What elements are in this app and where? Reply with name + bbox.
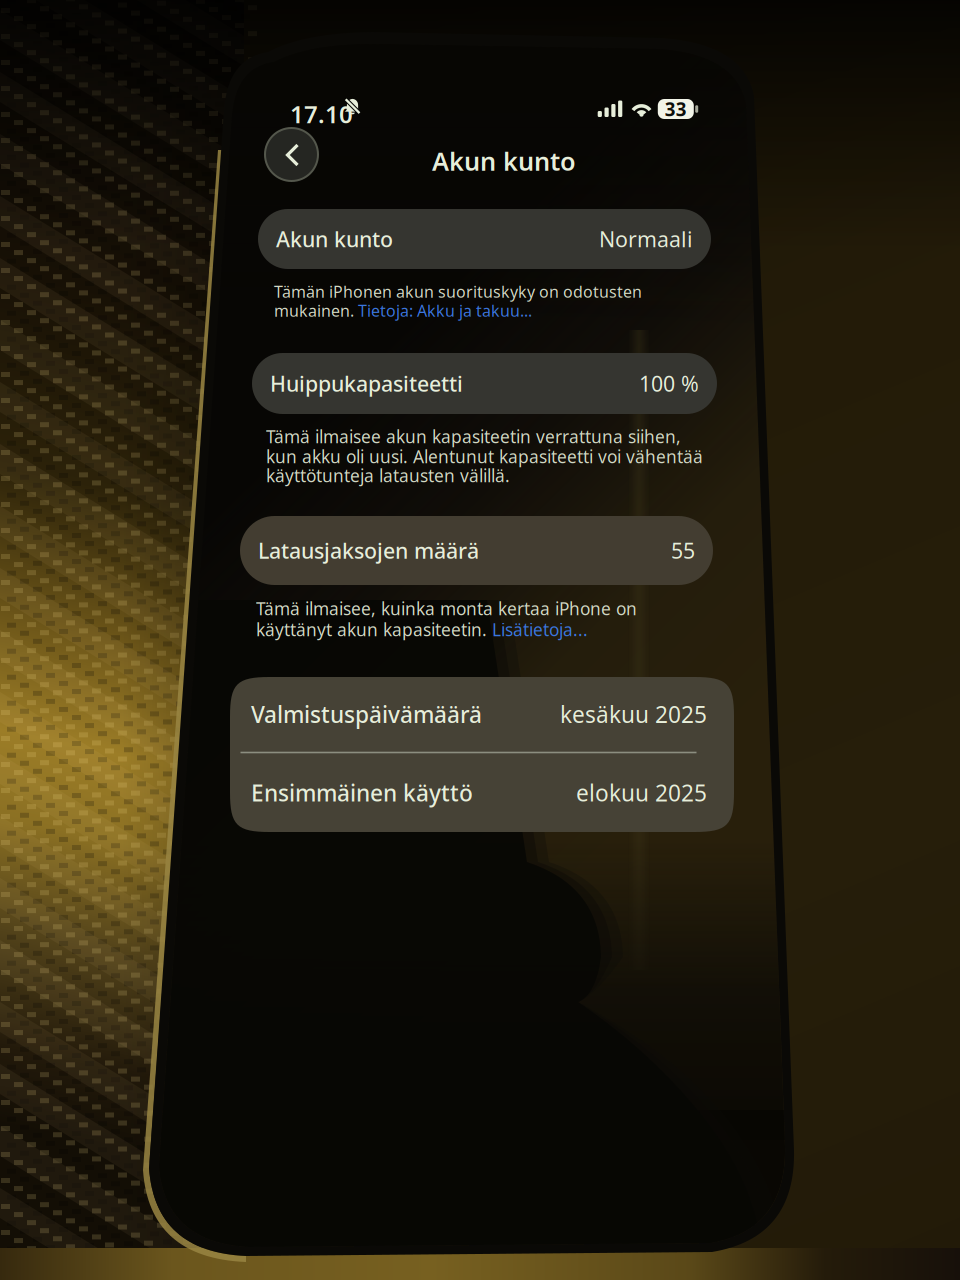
button[interactable]: Back [264,127,319,182]
staticText: Akun kunto [432,144,576,178]
staticText: Akun kunto [276,225,393,253]
staticText: 55 [671,536,695,565]
staticText: Normaali [599,225,693,253]
button[interactable]: Valmistuspäivämäärä [230,677,734,752]
button[interactable]: Ensimmäinen käyttö [230,753,734,832]
staticText: Latausjaksojen määrä [258,536,479,565]
staticText: Tietoja: Akku ja takuu... [358,300,532,321]
button[interactable]: Akun kunto [258,209,711,269]
staticText: Valmistuspäivämäärä [251,699,482,729]
staticText: 17.10 [290,98,353,130]
staticText: Tämän iPhonen akun suorituskyky on odotu… [274,281,642,302]
staticText: mukainen. [274,300,358,321]
button[interactable]: Latausjaksojen määrä [240,516,713,585]
staticText: Ensimmäinen käyttö [251,778,473,808]
staticText: käyttötunteja latausten välillä. [266,464,510,487]
staticText: Huippukapasiteetti [270,369,463,398]
staticText: kesäkuu 2025 [560,699,707,729]
staticText: Lisätietoja... [492,618,588,641]
staticText: 33 [665,97,687,121]
staticText: elokuu 2025 [576,778,707,808]
staticText: kun akku oli uusi. Alentunut kapasiteett… [266,445,703,468]
staticText: käyttänyt akun kapasiteetin. [256,618,492,641]
staticText: Tämä ilmaisee akun kapasiteetin verrattu… [266,425,681,448]
staticText: Tämä ilmaisee, kuinka monta kertaa iPhon… [256,597,637,620]
staticText: 100 % [639,369,699,398]
button[interactable]: Huippukapasiteetti [252,353,717,414]
